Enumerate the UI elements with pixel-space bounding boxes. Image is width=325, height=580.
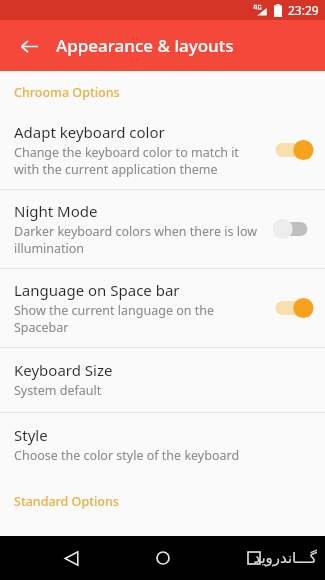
staticText: Chrooma Options [14,84,120,101]
staticText: Show the current language on the Spaceba… [14,302,215,335]
button[interactable]: Recents [234,538,274,578]
button[interactable]: On [273,296,313,320]
staticText: Adapt keyboard color [14,122,165,142]
button[interactable]: Keyboard Size [0,348,325,412]
staticText: گـــاندروید [253,549,317,566]
button[interactable]: Night Mode [0,190,325,268]
staticText: Appearance & layouts [56,34,234,57]
staticText: Choose the color style of the keyboard [14,447,240,464]
button[interactable]: Language on Space bar [0,269,325,347]
staticText: Change the keyboard color to match it wi… [14,144,239,177]
button[interactable]: Adapt keyboard color [0,111,325,189]
staticText: Standard Options [14,493,119,510]
button[interactable]: Back [12,29,46,63]
staticText: Keyboard Size [14,360,113,380]
staticText: Style [14,425,48,445]
button[interactable]: Home [143,538,183,578]
button[interactable]: Style [0,413,325,477]
button[interactable]: Back [51,538,91,578]
button[interactable]: On [273,138,313,162]
button[interactable]: Off [273,217,313,241]
staticText: Darker keyboard colors when there is low… [14,223,258,256]
staticText: Language on Space bar [14,280,180,300]
staticText: System default [14,382,102,399]
staticText: Night Mode [14,201,98,221]
staticText: 23:29 [288,2,319,18]
